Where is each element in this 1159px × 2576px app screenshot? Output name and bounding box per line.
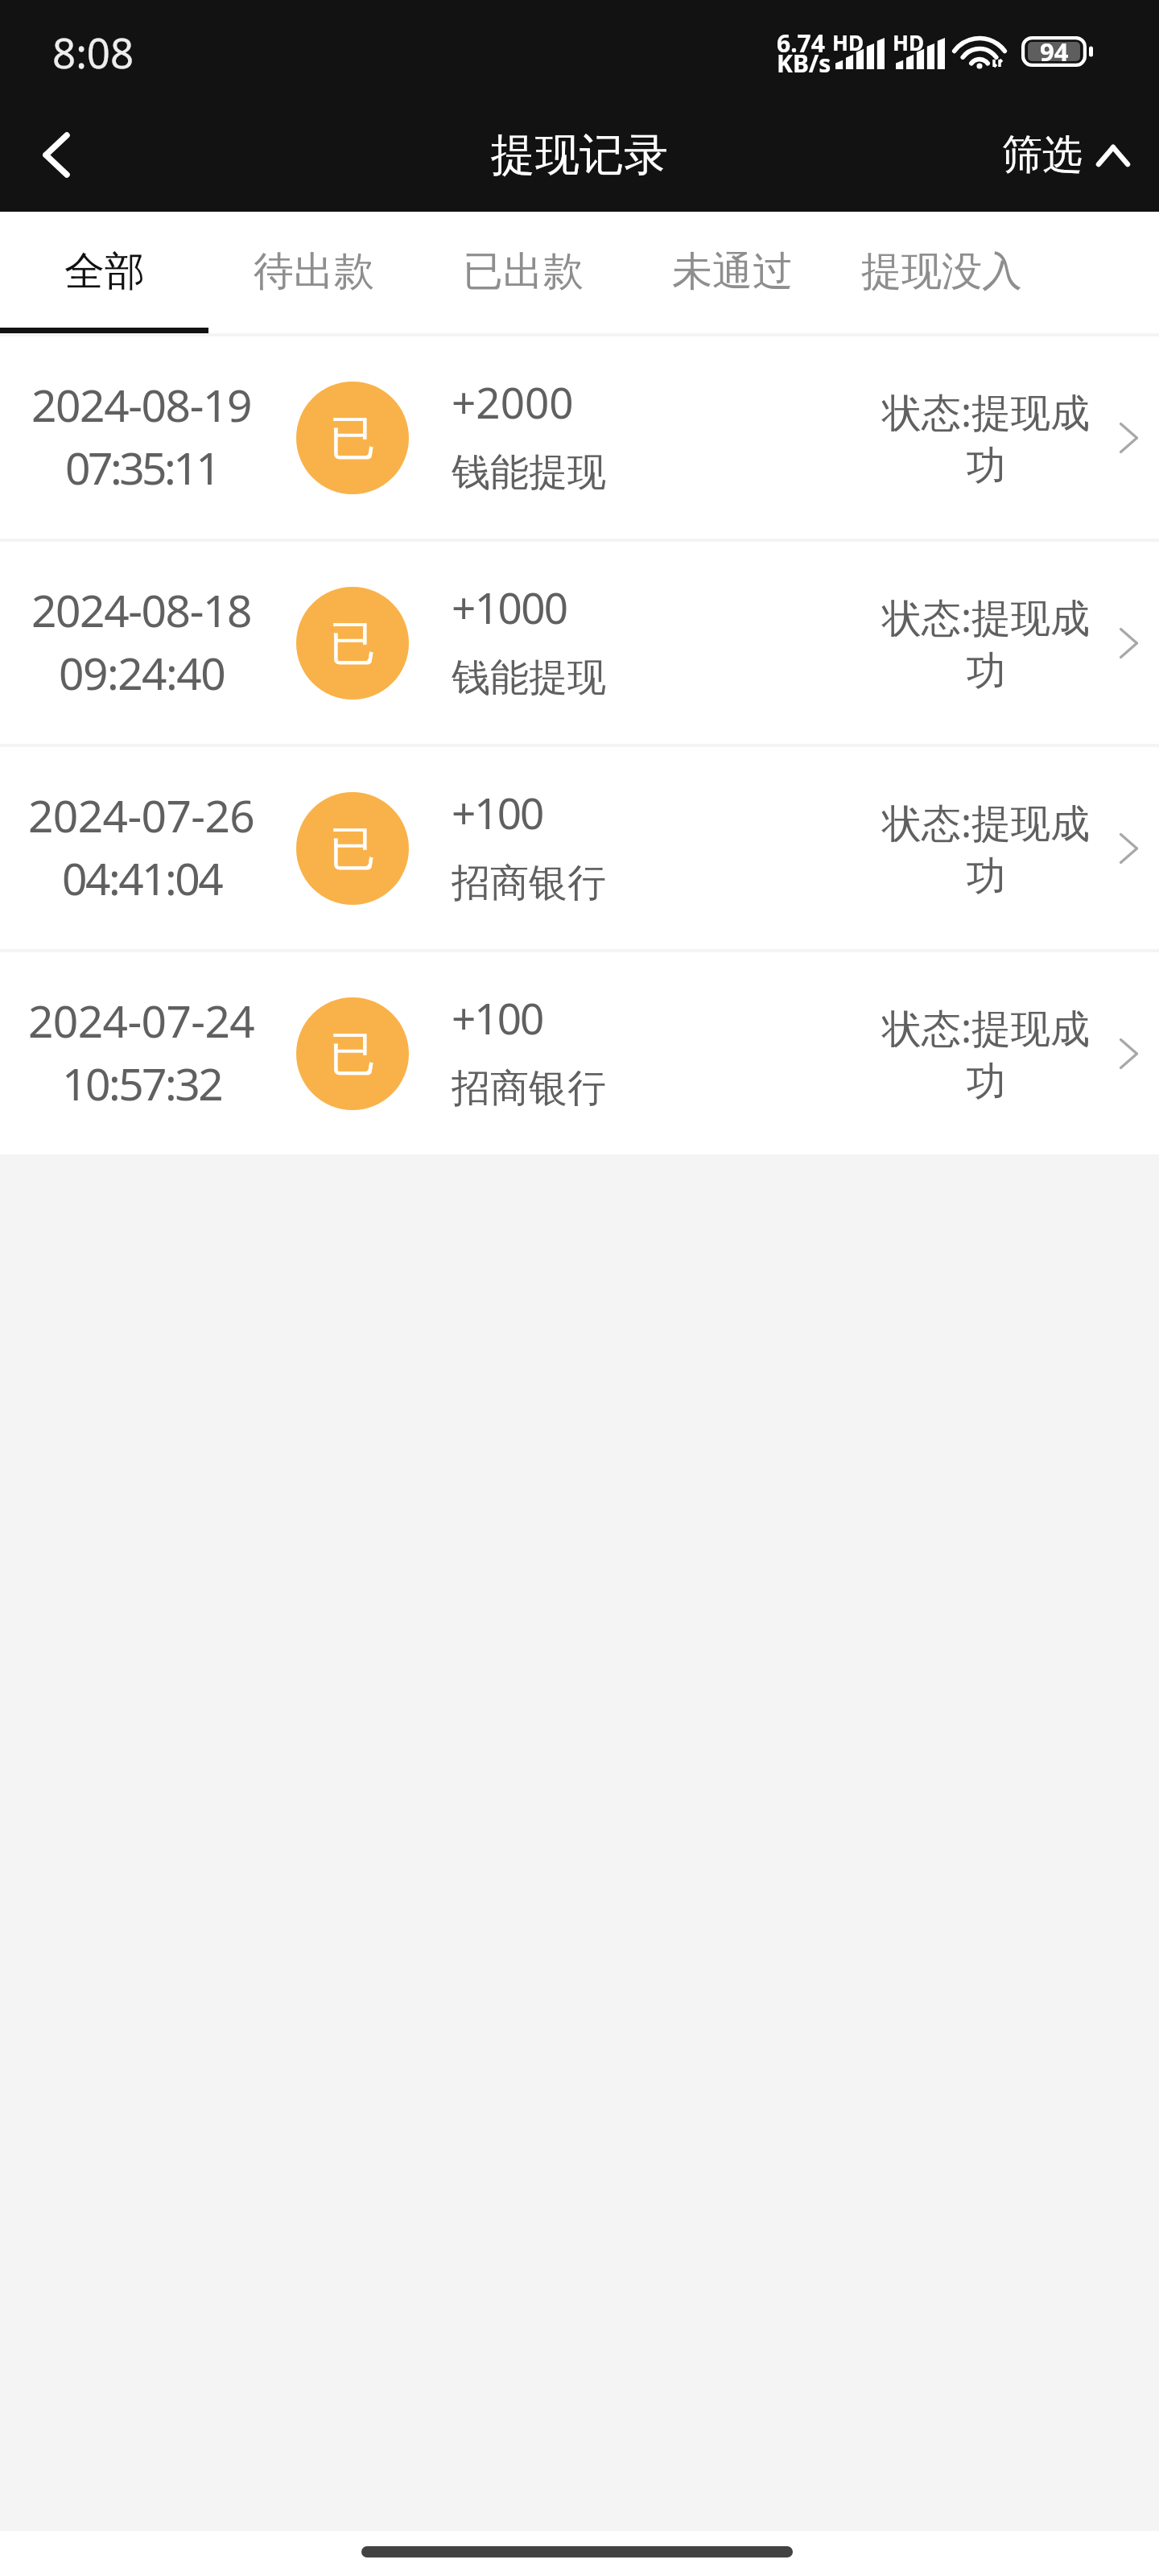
staticText: 8:08 <box>52 24 134 80</box>
button[interactable]: 2024-07-26 <box>0 747 1159 949</box>
staticText: 已 <box>329 1025 376 1084</box>
staticText: KB/s <box>777 47 831 80</box>
button[interactable]: 2024-07-24 <box>0 952 1159 1154</box>
staticText: HD <box>893 28 924 56</box>
button[interactable]: 2024-08-18 <box>0 542 1159 744</box>
button[interactable]: 已出款 <box>419 212 628 333</box>
staticText: 待出款 <box>254 246 374 297</box>
staticText: +1000 <box>452 578 567 636</box>
staticText: 钱能提现 <box>452 448 606 497</box>
staticText: 已 <box>329 819 376 878</box>
staticText: 已 <box>329 614 376 673</box>
staticText: 04:41:04 <box>62 848 222 908</box>
staticText: 提现没入 <box>861 246 1022 297</box>
button[interactable]: 提现没入 <box>837 212 1046 333</box>
staticText: 状态:提现成功 <box>873 590 1099 696</box>
staticText: 筛选 <box>1002 130 1083 180</box>
button[interactable]: 筛选 <box>971 105 1159 212</box>
staticText: 未通过 <box>672 246 793 297</box>
button[interactable]: 全部 <box>0 212 209 333</box>
staticText: 94 <box>1040 35 1069 68</box>
staticText: 已出款 <box>463 246 584 297</box>
staticText: 全部 <box>64 246 145 297</box>
staticText: 2024-08-19 <box>31 374 252 435</box>
staticText: 状态:提现成功 <box>873 1001 1099 1106</box>
staticText: +100 <box>452 989 543 1046</box>
staticText: 2024-07-26 <box>28 785 255 845</box>
staticText: 10:57:32 <box>62 1053 222 1113</box>
staticText: 2024-08-18 <box>31 580 252 640</box>
staticText: 2024-07-24 <box>28 990 255 1051</box>
staticText: 状态:提现成功 <box>873 795 1099 901</box>
staticText: 09:24:40 <box>59 642 225 703</box>
staticText: 提现记录 <box>491 127 668 183</box>
button[interactable]: Back <box>0 105 106 212</box>
button[interactable]: 待出款 <box>209 212 419 333</box>
staticText: 6.74 <box>777 27 825 60</box>
staticText: +100 <box>452 783 543 841</box>
staticText: 招商银行 <box>452 1064 606 1113</box>
staticText: 07:35:11 <box>65 437 219 497</box>
button[interactable]: 2024-08-19 <box>0 336 1159 539</box>
staticText: 状态:提现成功 <box>873 385 1099 490</box>
staticText: +2000 <box>452 373 574 431</box>
button[interactable]: 未通过 <box>628 212 837 333</box>
staticText: 钱能提现 <box>452 654 606 702</box>
staticText: 已 <box>329 409 376 468</box>
staticText: 招商银行 <box>452 859 606 907</box>
staticText: HD <box>832 28 864 56</box>
